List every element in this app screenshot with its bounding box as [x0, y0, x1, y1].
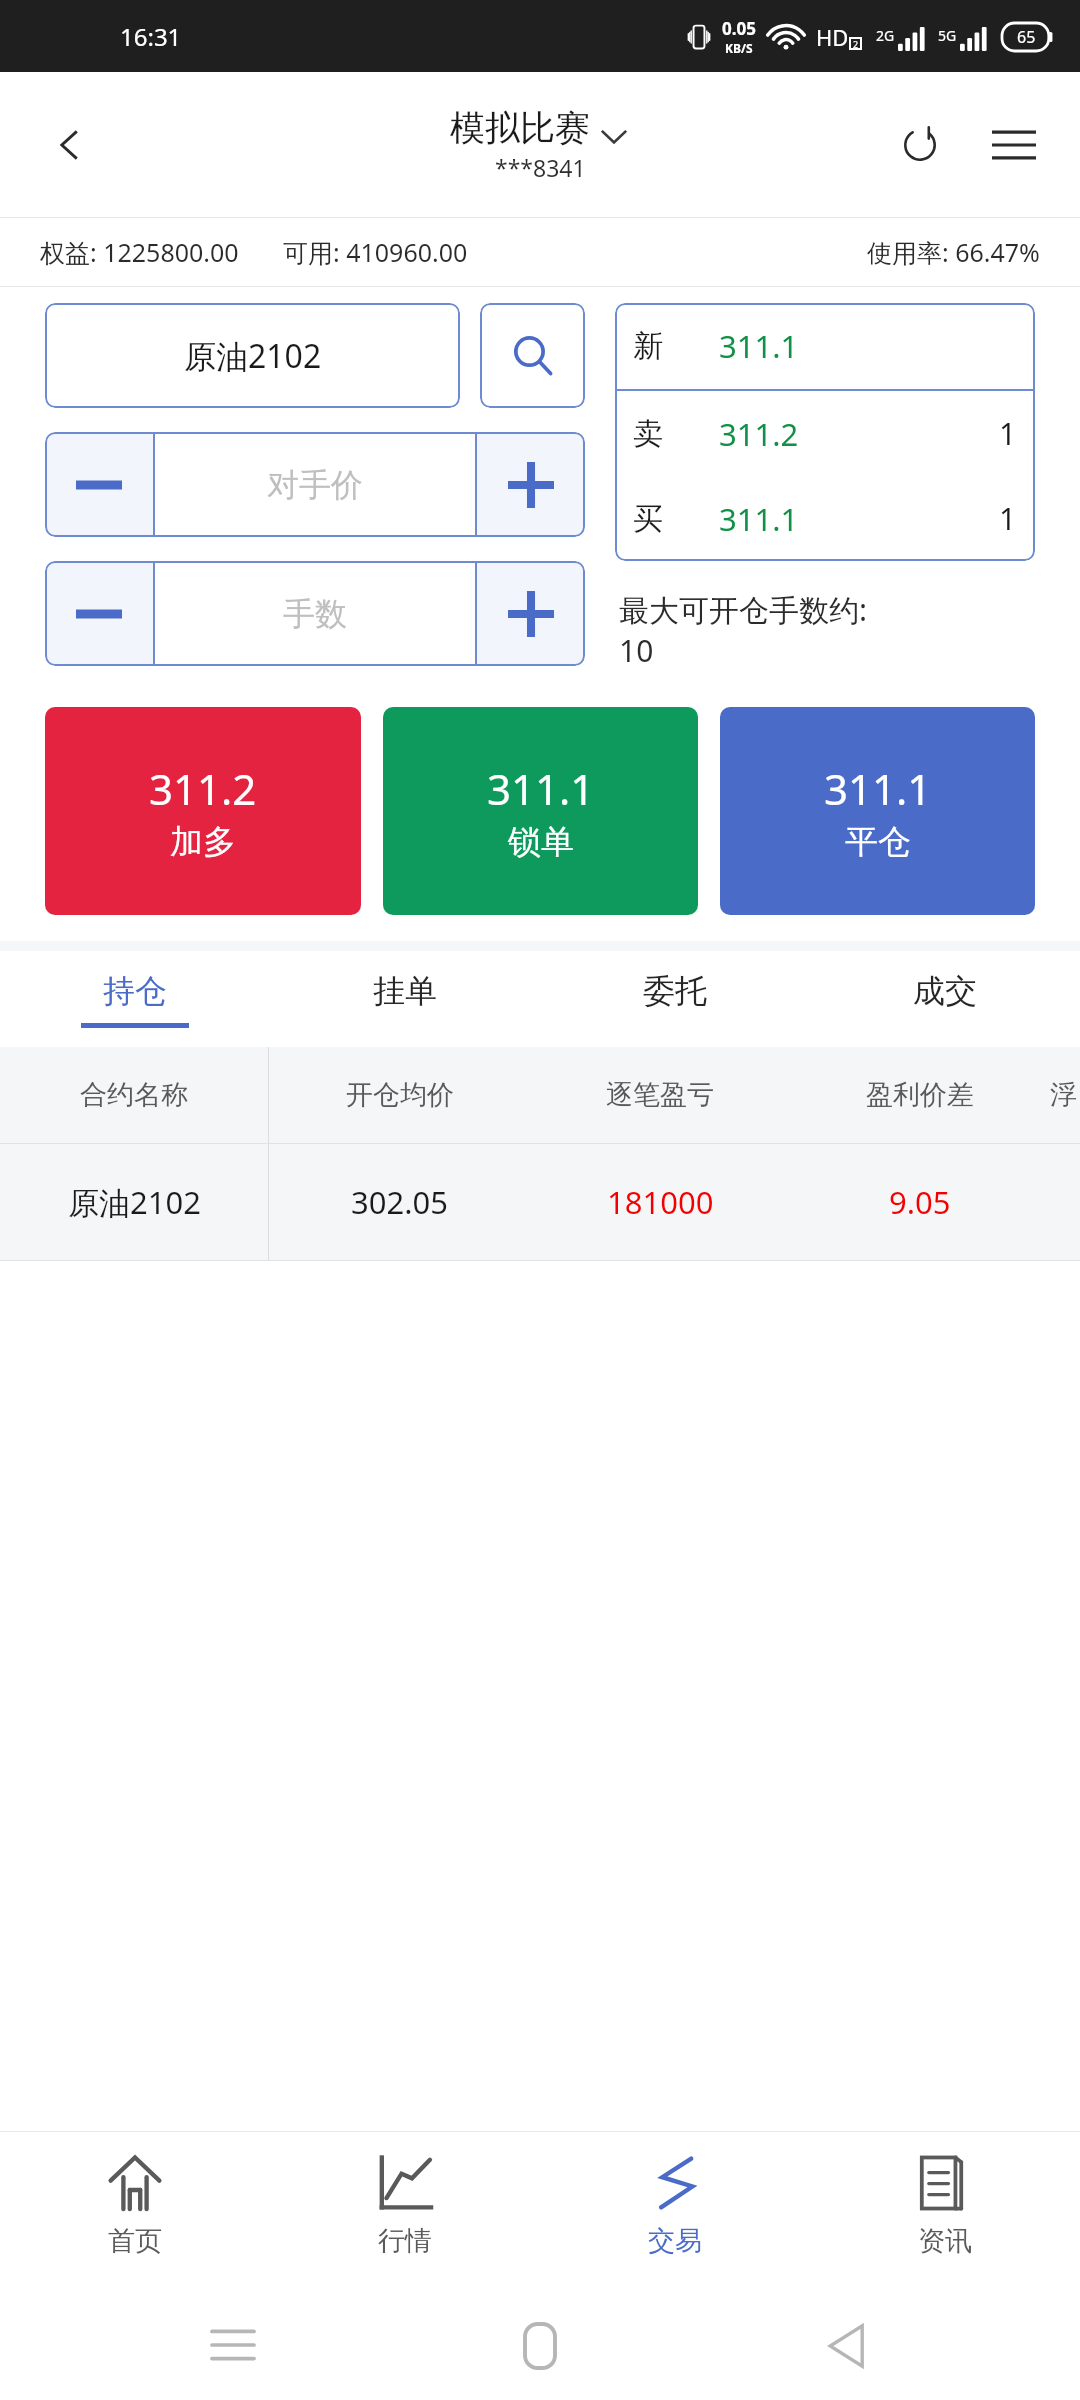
button[interactable]: 手数 [155, 561, 475, 666]
staticText: 使用率: 66.47% [867, 235, 1040, 269]
button[interactable]: Recents [80, 2300, 386, 2400]
staticText: 合约名称 [80, 1078, 188, 1112]
staticText: ***8341 [495, 152, 586, 183]
button[interactable]: 委托 [540, 951, 810, 1047]
staticText: 买 [633, 500, 719, 538]
staticText: 10 [619, 630, 654, 671]
button[interactable]: 原油2102 [0, 1144, 1080, 1260]
staticText: 资讯 [918, 2224, 972, 2258]
staticText: 65 [1017, 26, 1036, 48]
staticText: 行情 [378, 2224, 432, 2258]
button[interactable]: Back [30, 105, 110, 185]
staticText: 新 [633, 327, 719, 365]
button[interactable]: Increase [477, 432, 585, 537]
button[interactable]: 成交 [810, 951, 1080, 1047]
staticText: 311.1 [719, 498, 999, 540]
staticText: 交易 [648, 2224, 702, 2258]
staticText: 311.2 [719, 413, 999, 455]
staticText: 302.05 [351, 1181, 448, 1223]
staticText: 原油2102 [184, 334, 322, 378]
staticText: 2G [876, 26, 895, 45]
staticText: 181000 [607, 1181, 714, 1223]
staticText: 模拟比赛 [450, 106, 590, 150]
staticText: 委托 [643, 971, 707, 1011]
button[interactable]: Search [480, 303, 585, 408]
button[interactable]: 挂单 [270, 951, 540, 1047]
staticText: 平仓 [845, 821, 911, 863]
button[interactable]: 对手价 [155, 432, 475, 537]
staticText: 5G [938, 26, 957, 45]
button[interactable]: 311.1 [720, 707, 1035, 915]
staticText: 手数 [283, 594, 347, 634]
staticText: 1 [999, 498, 1017, 539]
button[interactable]: Refresh [880, 105, 960, 185]
button[interactable]: Decrease [45, 432, 153, 537]
staticText: 挂单 [373, 971, 437, 1011]
staticText: 311.1 [824, 760, 932, 817]
staticText: 原油2102 [68, 1181, 201, 1223]
staticText: 锁单 [508, 821, 574, 863]
staticText: 311.2 [149, 760, 257, 817]
staticText: 成交 [913, 971, 977, 1011]
button[interactable]: 311.2 [45, 707, 361, 915]
staticText: 持仓 [103, 971, 167, 1011]
button[interactable]: 新 [615, 303, 1035, 561]
staticText: 311.1 [487, 760, 595, 817]
staticText: 2 [853, 38, 859, 50]
button[interactable]: 首页 [0, 2132, 270, 2300]
staticText: HD [816, 22, 849, 52]
button[interactable]: 原油2102 [45, 303, 460, 408]
staticText: 逐笔盈亏 [606, 1078, 714, 1112]
staticText: 16:31 [120, 20, 182, 53]
button[interactable]: 交易 [540, 2132, 810, 2300]
staticText: 盈利价差 [866, 1078, 974, 1112]
staticText: 卖 [633, 415, 719, 453]
staticText: 最大可开仓手数约: [619, 589, 868, 630]
button[interactable]: Home [386, 2300, 693, 2400]
button[interactable]: 行情 [270, 2132, 540, 2300]
staticText: 加多 [170, 821, 236, 863]
staticText: 浮 [1050, 1078, 1077, 1112]
staticText: 对手价 [267, 465, 363, 505]
button[interactable]: Increase [477, 561, 585, 666]
button[interactable]: 资讯 [810, 2132, 1080, 2300]
staticText: 9.05 [889, 1181, 951, 1223]
staticText: 1 [999, 413, 1017, 454]
button[interactable]: 持仓 [0, 951, 270, 1047]
staticText: 可用: 410960.00 [283, 235, 468, 269]
button[interactable]: 311.1 [383, 707, 698, 915]
staticText: 开仓均价 [346, 1078, 454, 1112]
button[interactable]: Menu [974, 105, 1054, 185]
staticText: KB/S [725, 40, 753, 56]
button[interactable]: 模拟比赛 [450, 106, 630, 183]
button[interactable]: Decrease [45, 561, 153, 666]
staticText: 0.05 [722, 17, 756, 40]
staticText: 权益: 1225800.00 [40, 235, 239, 269]
staticText: 311.1 [719, 325, 1017, 367]
staticText: 首页 [108, 2224, 162, 2258]
button[interactable]: Back [693, 2300, 1000, 2400]
